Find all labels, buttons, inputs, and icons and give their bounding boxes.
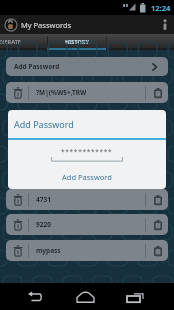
button[interactable] — [156, 15, 174, 34]
button[interactable] — [149, 189, 167, 210]
button[interactable] — [124, 283, 146, 310]
staticText: My Passwords — [21, 20, 72, 30]
button[interactable]: 9220 — [6, 214, 168, 235]
staticText: 4731 — [36, 195, 51, 204]
button[interactable]: HISTORY — [47, 34, 106, 48]
staticText: 12:24 — [151, 3, 171, 13]
button[interactable]: GENERATE — [0, 34, 36, 48]
staticText: Add Password — [62, 172, 112, 182]
button[interactable] — [149, 82, 167, 103]
staticText: Add Password — [14, 118, 74, 130]
staticText: ************ — [61, 147, 113, 156]
button[interactable]: 4731 — [6, 189, 168, 210]
staticText: Add Password — [14, 62, 60, 71]
button[interactable] — [73, 283, 97, 310]
button[interactable]: Add Password — [6, 57, 168, 76]
button[interactable]: ?M|(%W5+,TRW — [6, 82, 168, 103]
button[interactable] — [24, 283, 46, 310]
button[interactable] — [149, 240, 167, 261]
button[interactable]: Add Password — [37, 169, 137, 185]
button[interactable] — [149, 214, 167, 235]
button[interactable]: mypass — [6, 240, 168, 261]
staticText: mypass — [36, 246, 61, 255]
staticText: HISTORY — [65, 38, 89, 45]
staticText: GENERATE — [0, 38, 21, 45]
staticText: ?M|(%W5+,TRW — [36, 88, 87, 97]
staticText: 9220 — [36, 220, 51, 229]
